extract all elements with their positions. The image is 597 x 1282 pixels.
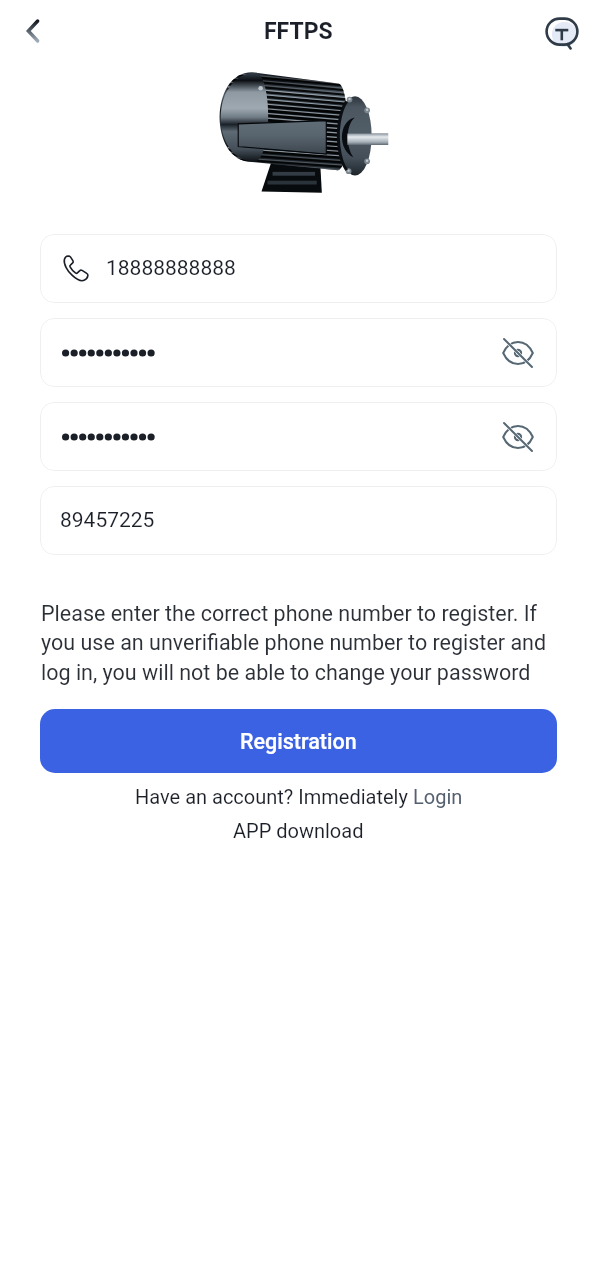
staticText: Registration [240,729,357,754]
staticText: Have an account? Immediately [135,785,413,808]
staticText: Login [413,785,463,808]
staticText: FFTPS [264,18,333,45]
button[interactable]: Registration [40,709,557,773]
staticText: 89457225 [60,508,155,533]
button[interactable]: Back [11,9,55,53]
button[interactable]: APP download [233,819,364,842]
staticText: Please enter the correct phone number to… [41,601,557,686]
button[interactable]: Show password [495,330,541,376]
button[interactable]: Translate [541,13,583,55]
staticText: 18888888888 [106,256,236,281]
button[interactable]: Show password [495,414,541,460]
button[interactable]: 18888888888 [40,234,557,303]
button[interactable]: 89457225 [40,486,557,555]
button[interactable]: Login [413,785,463,808]
button[interactable]: Show password [40,318,557,387]
button[interactable]: Show password [40,402,557,471]
staticText: APP download [233,819,364,842]
